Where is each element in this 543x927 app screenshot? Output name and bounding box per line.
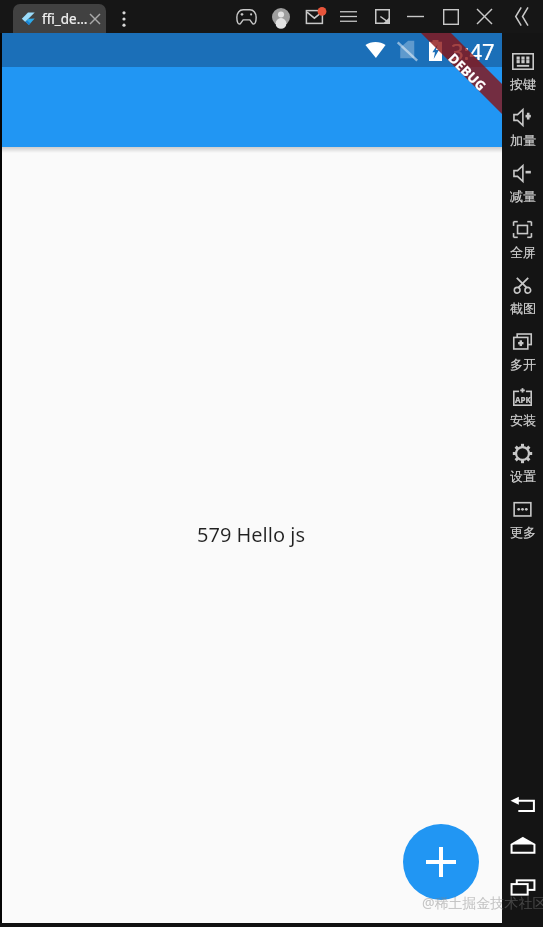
button[interactable]: 截图 xyxy=(502,269,543,322)
button[interactable]: Games xyxy=(230,0,263,33)
staticText: 按键 xyxy=(510,76,536,92)
staticText: ffi_de… xyxy=(42,10,88,28)
button[interactable]: Collapse xyxy=(508,0,537,33)
button[interactable]: 更多 xyxy=(502,493,543,546)
button[interactable]: Home xyxy=(502,828,543,862)
button[interactable]: 减量 xyxy=(502,157,543,210)
staticText: 更多 xyxy=(510,524,536,540)
staticText: 设置 xyxy=(510,468,536,484)
staticText: 579 Hello js xyxy=(197,521,305,548)
button[interactable]: 设置 xyxy=(502,437,543,490)
button[interactable]: ffi_de… xyxy=(13,4,106,33)
button[interactable]: Minimize xyxy=(401,0,430,33)
button[interactable]: Restore xyxy=(369,0,396,33)
staticText: APK xyxy=(515,394,531,405)
staticText: DEBUG xyxy=(446,49,491,94)
button[interactable]: 加量 xyxy=(502,101,543,154)
button[interactable]: Maximize xyxy=(437,0,465,33)
staticText: 3:47 xyxy=(451,36,495,66)
button[interactable]: Mail xyxy=(300,0,332,33)
staticText: 安装 xyxy=(510,412,536,428)
staticText: 多开 xyxy=(510,356,536,372)
button[interactable]: Close xyxy=(471,0,498,33)
button[interactable]: 按键 xyxy=(502,45,543,98)
staticText: 全屏 xyxy=(510,244,536,260)
button[interactable]: 多开 xyxy=(502,325,543,378)
button[interactable]: Close tab xyxy=(88,12,102,26)
staticText: 加量 xyxy=(510,132,536,148)
button[interactable]: Back xyxy=(502,787,543,821)
staticText: 减量 xyxy=(510,188,536,204)
staticText: 截图 xyxy=(510,300,536,316)
button[interactable]: Account xyxy=(266,0,296,33)
button[interactable]: APK xyxy=(502,381,543,434)
button[interactable]: Menu xyxy=(334,0,363,33)
button[interactable]: Tab options xyxy=(113,4,135,33)
button[interactable]: Add xyxy=(403,824,479,900)
button[interactable]: 全屏 xyxy=(502,213,543,266)
staticText: @稀土掘金技术社区 xyxy=(422,893,543,912)
button[interactable]: Recents xyxy=(502,870,543,904)
